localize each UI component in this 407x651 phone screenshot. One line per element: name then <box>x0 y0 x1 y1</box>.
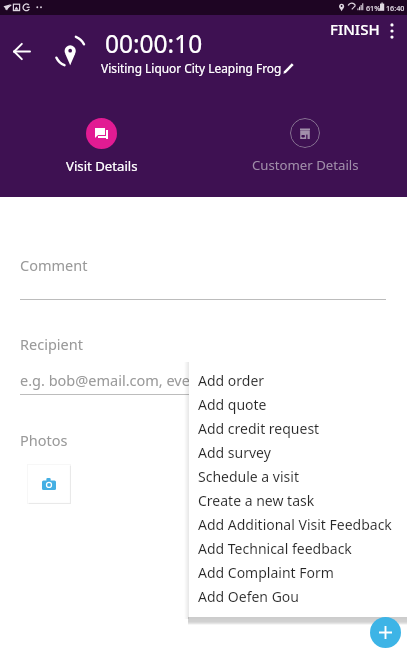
staticText: Add quote <box>198 395 267 414</box>
button[interactable]: Add Additional Visit Feedback <box>189 512 407 536</box>
staticText: Add Technical feedback <box>198 539 352 558</box>
button[interactable]: Take photo <box>27 464 71 504</box>
button[interactable]: Create a new task <box>189 488 407 512</box>
button[interactable]: Back <box>4 34 39 69</box>
staticText: FINISH <box>330 19 380 39</box>
staticText: Schedule a visit <box>198 467 299 486</box>
staticText: Add order <box>198 371 265 390</box>
button[interactable]: FINISH <box>330 19 380 39</box>
staticText: 00:00:10 <box>105 27 203 60</box>
staticText: Photos <box>20 430 68 450</box>
button[interactable]: Add credit request <box>189 416 407 440</box>
button[interactable]: Add quote <box>189 392 407 416</box>
staticText: Visit Details <box>66 157 138 175</box>
button[interactable]: Add Complaint Form <box>189 560 407 584</box>
button[interactable]: More options <box>378 17 406 45</box>
staticText: Add Complaint Form <box>198 563 334 582</box>
button[interactable]: Add <box>370 617 401 648</box>
button[interactable]: Add Technical feedback <box>189 536 407 560</box>
staticText: Add Additional Visit Feedback <box>198 515 392 534</box>
staticText: Add survey <box>198 443 271 462</box>
staticText: Recipient <box>20 334 83 354</box>
staticText: Add Oefen Gou <box>198 587 299 606</box>
staticText: Create a new task <box>198 491 315 510</box>
button[interactable]: Add survey <box>189 440 407 464</box>
staticText: Visiting Liquor City Leaping Frog <box>101 60 282 76</box>
button[interactable]: Customer Details <box>203 114 407 178</box>
staticText: e.g. bob@email.com, eve@email.com <box>20 370 274 390</box>
button[interactable]: Schedule a visit <box>189 464 407 488</box>
staticText: Customer Details <box>252 156 359 174</box>
staticText: 16:40 <box>386 3 405 13</box>
button[interactable]: Add Oefen Gou <box>189 584 407 608</box>
button[interactable]: Visit Details <box>0 114 203 179</box>
staticText: Add credit request <box>198 419 320 438</box>
staticText: Comment <box>20 255 88 275</box>
button[interactable]: Add order <box>189 368 407 392</box>
staticText: 61% <box>366 3 381 13</box>
